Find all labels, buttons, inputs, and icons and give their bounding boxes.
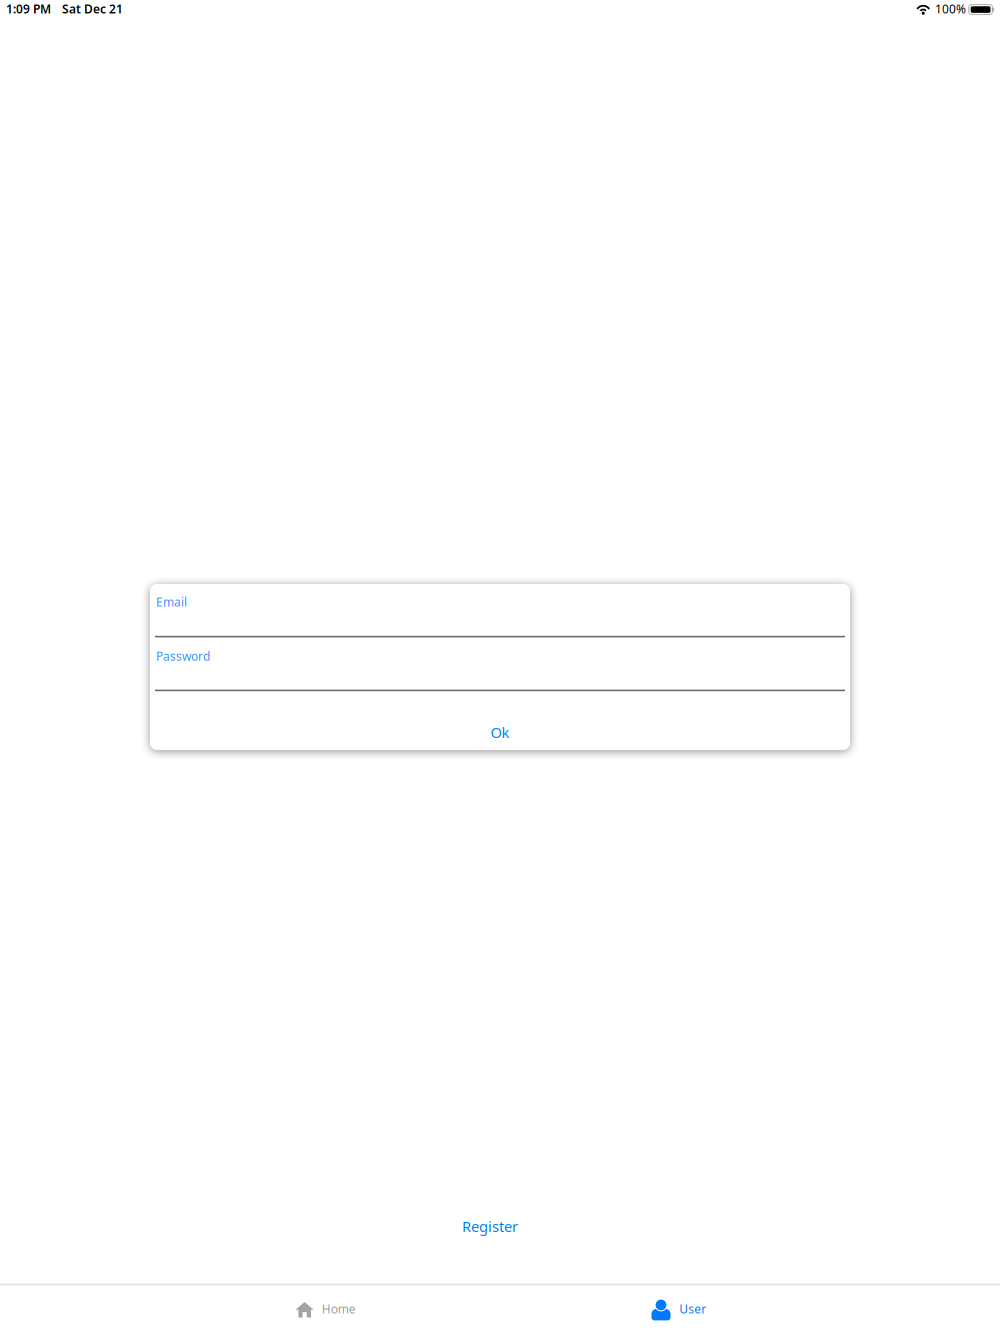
- staticText: User: [679, 1301, 706, 1317]
- button[interactable]: Home: [0, 1285, 500, 1334]
- button[interactable]: Email: [150, 584, 850, 637]
- staticText: 1:09 PM: [6, 1, 51, 17]
- button[interactable]: Ok: [150, 690, 850, 750]
- staticText: Register: [462, 1217, 518, 1236]
- staticText: 100%: [935, 1, 966, 17]
- button[interactable]: Register: [454, 1213, 526, 1240]
- staticText: Home: [322, 1301, 356, 1317]
- staticText: Sat Dec 21: [62, 1, 123, 17]
- button[interactable]: User: [500, 1285, 1000, 1334]
- staticText: Email: [156, 594, 187, 610]
- button[interactable]: Password: [150, 637, 850, 690]
- staticText: Password: [156, 648, 210, 664]
- staticText: Ok: [490, 722, 509, 742]
